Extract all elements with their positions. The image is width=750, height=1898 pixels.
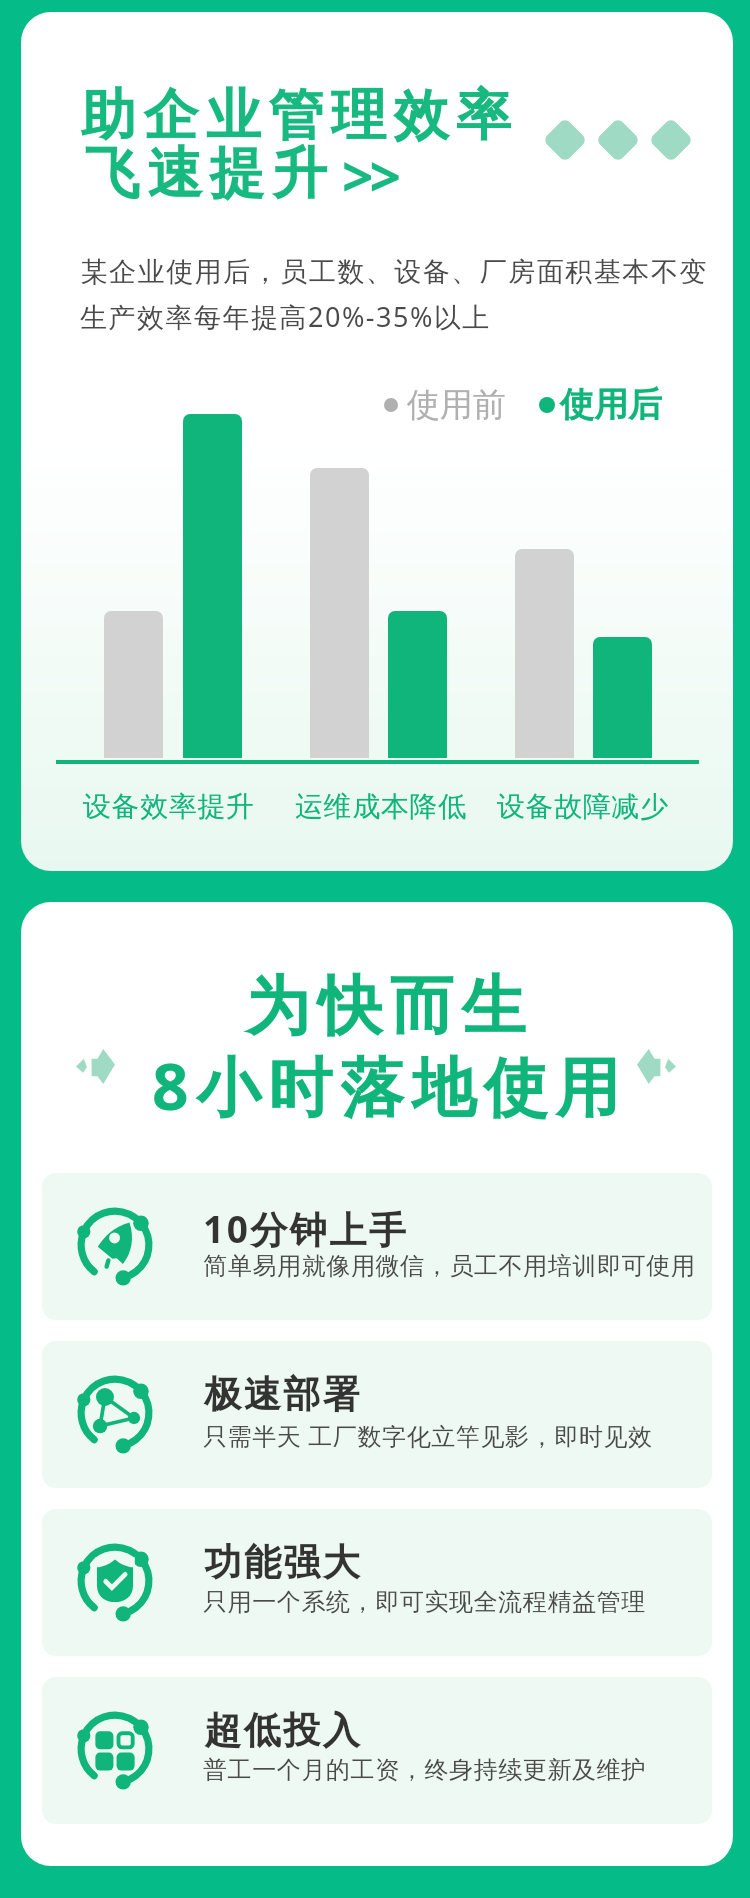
- staticText: 简单易用就像用微信，员工不用培训即可使用: [203, 1251, 695, 1281]
- staticText: 使用前: [407, 384, 506, 426]
- button[interactable]: 超低投入: [42, 1677, 712, 1824]
- staticText: >>: [342, 138, 397, 213]
- button[interactable]: 功能强大: [42, 1509, 712, 1656]
- staticText: 设备故障减少: [497, 789, 669, 824]
- staticText: 极速部署: [203, 1371, 361, 1418]
- staticText: 使用后: [560, 383, 662, 426]
- button[interactable]: 10分钟上手: [42, 1173, 712, 1320]
- staticText: 助企业管理效率: [81, 81, 519, 150]
- staticText: 超低投入: [203, 1707, 361, 1754]
- staticText: 只用一个系统，即可实现全流程精益管理: [203, 1587, 646, 1617]
- staticText: 普工一个月的工资，终身持续更新及维护: [203, 1755, 646, 1785]
- staticText: 功能强大: [203, 1539, 361, 1586]
- staticText: 某企业使用后，员工数、设备、厂房面积基本不变 生产效率每年提高20%-35%以上: [80, 255, 707, 335]
- staticText: 只需半天 工厂数字化立竿见影，即时见效: [203, 1419, 653, 1452]
- staticText: 运维成本降低: [295, 789, 467, 824]
- button[interactable]: 极速部署: [42, 1341, 712, 1488]
- staticText: 10分钟上手: [203, 1203, 409, 1254]
- staticText: 设备效率提升: [83, 789, 255, 824]
- staticText: 为快而生: [246, 966, 534, 1047]
- staticText: 飞速提升: [81, 139, 331, 208]
- staticText: 8小时落地使用: [152, 1042, 628, 1129]
